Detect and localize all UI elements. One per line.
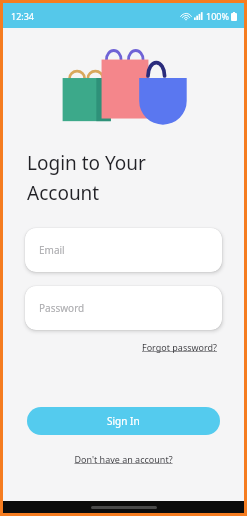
button[interactable]: Sign In (27, 407, 220, 435)
staticText: Forgot password? (142, 341, 218, 353)
staticText: Password (39, 301, 85, 315)
staticText: Email (39, 243, 65, 257)
button[interactable]: Don't have an account? (72, 451, 175, 467)
staticText: Login to Your (27, 150, 146, 176)
button[interactable]: Forgot password? (140, 339, 220, 355)
button[interactable]: Email (25, 228, 222, 272)
button[interactable]: Password (25, 286, 222, 330)
staticText: Don't have an account? (74, 453, 173, 465)
staticText: Account (27, 180, 100, 206)
staticText: 12:34 (11, 10, 35, 22)
staticText: Sign In (107, 414, 140, 428)
other: Shopping bags (58, 38, 190, 126)
staticText: 100% (206, 10, 229, 22)
